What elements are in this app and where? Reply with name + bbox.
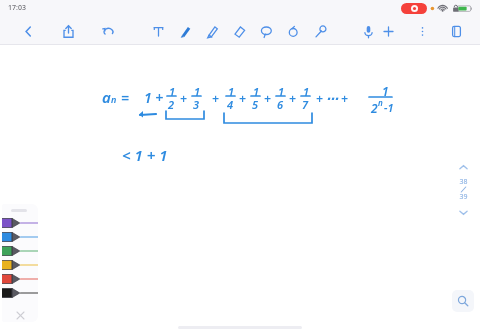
staticText: + — [239, 90, 246, 106]
staticText: 1 + — [144, 88, 164, 107]
staticText: + ⋯ + — [316, 90, 348, 106]
button[interactable]: Share — [58, 21, 78, 41]
button[interactable]: Highlighter — [202, 21, 222, 41]
staticText: 1 — [253, 84, 260, 99]
staticText: 38 — [459, 177, 468, 187]
button[interactable]: Eraser — [229, 21, 249, 41]
staticText: 1 — [169, 84, 176, 99]
staticText: 2 — [168, 97, 175, 112]
button[interactable]: Pen color 1 — [2, 216, 38, 230]
staticText: 5 — [252, 97, 259, 112]
button[interactable]: Pen tool — [175, 21, 195, 41]
button[interactable]: Record audio — [358, 21, 378, 41]
button[interactable]: Undo — [98, 21, 118, 41]
staticText: 6 — [277, 97, 284, 112]
button[interactable]: Back — [18, 21, 38, 41]
button[interactable]: Laser — [310, 21, 330, 41]
staticText: + — [212, 90, 219, 106]
staticText: < 1 + 1 — [122, 145, 168, 165]
staticText: 1 — [228, 84, 235, 99]
button[interactable]: Add — [378, 21, 398, 41]
staticText: + — [289, 90, 296, 106]
button[interactable]: Pen color 6 — [2, 286, 38, 300]
staticText: + — [264, 90, 271, 106]
staticText: 1 — [303, 84, 310, 99]
staticText: -1 — [384, 100, 394, 115]
staticText: a — [102, 87, 111, 107]
staticText: 17:03 — [8, 3, 26, 13]
button[interactable]: Lasso — [256, 21, 276, 41]
staticText: n — [111, 93, 117, 105]
button[interactable]: Previous page — [453, 157, 473, 177]
button[interactable]: Pen color 4 — [2, 258, 38, 272]
button[interactable]: Zoom — [452, 290, 474, 312]
button[interactable]: Close palette — [2, 308, 38, 322]
staticText: 7 — [302, 97, 309, 112]
button[interactable]: Pen color 5 — [2, 272, 38, 286]
staticText: 1 — [382, 83, 389, 99]
staticText: 3 — [193, 97, 200, 112]
staticText: + — [180, 90, 187, 106]
button[interactable]: Text tool — [148, 21, 168, 41]
staticText: = — [121, 88, 130, 107]
staticText: 2 — [371, 100, 378, 116]
staticText: 1 — [194, 84, 201, 99]
staticText: 1 — [278, 84, 285, 99]
button[interactable]: Pages — [446, 21, 466, 41]
button[interactable]: Pen color 2 — [2, 230, 38, 244]
staticText: 4 — [227, 97, 234, 112]
staticText: 39 — [459, 192, 468, 202]
button[interactable]: More options — [412, 21, 432, 41]
button[interactable]: Shape — [283, 21, 303, 41]
button[interactable]: Pen color 3 — [2, 244, 38, 258]
button[interactable]: Next page — [453, 202, 473, 222]
staticText: n — [378, 97, 383, 108]
